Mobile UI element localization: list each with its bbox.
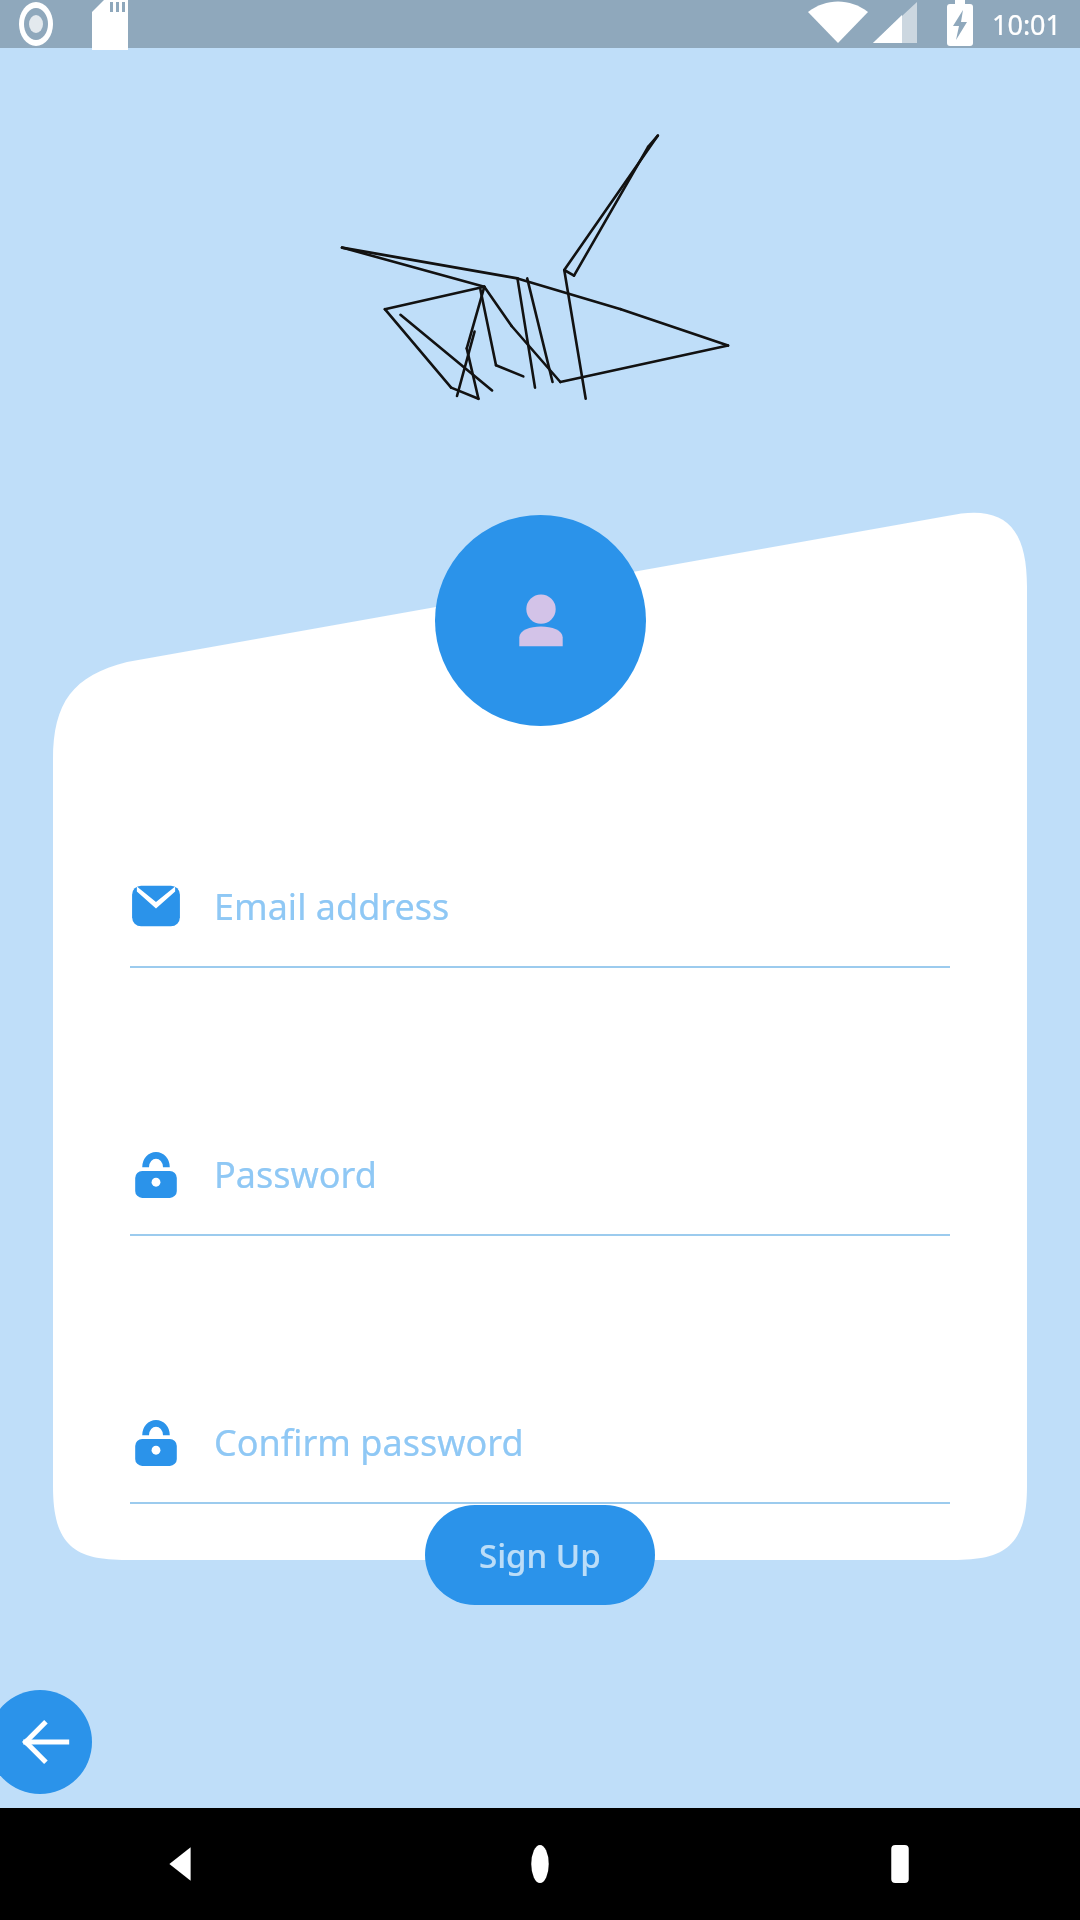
- staticText: 10:01: [992, 6, 1062, 43]
- button[interactable]: Profile photo: [435, 515, 646, 726]
- button[interactable]: Back: [0, 1808, 360, 1920]
- button[interactable]: Recent apps: [720, 1808, 1080, 1920]
- button[interactable]: Sign Up: [425, 1505, 655, 1605]
- button[interactable]: Password: [130, 1148, 950, 1236]
- button[interactable]: Confirm password: [130, 1416, 950, 1504]
- button[interactable]: Home: [360, 1808, 720, 1920]
- staticText: Email address: [214, 882, 450, 931]
- staticText: Sign Up: [479, 1533, 601, 1578]
- button[interactable]: Email address: [130, 880, 950, 968]
- button[interactable]: Back: [0, 1690, 92, 1794]
- staticText: Confirm password: [214, 1418, 524, 1467]
- staticText: Password: [214, 1150, 377, 1199]
